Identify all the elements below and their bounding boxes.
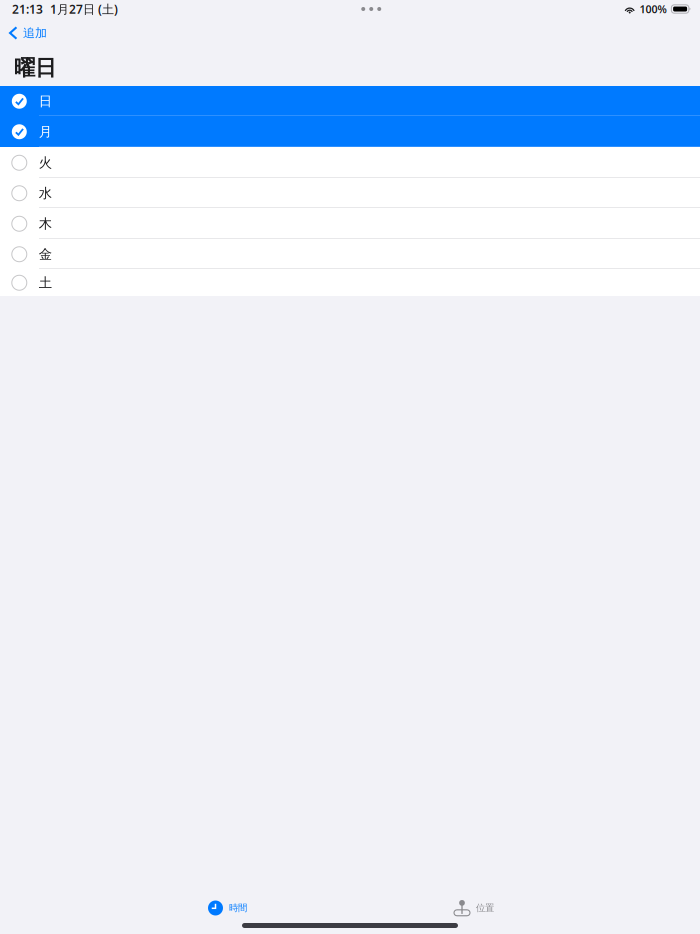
button[interactable]: 位置: [454, 896, 494, 920]
staticText: 追加: [23, 26, 47, 40]
staticText: 火: [39, 155, 52, 171]
staticText: 金: [39, 246, 52, 262]
staticText: 月: [39, 124, 52, 140]
button[interactable]: 月: [0, 116, 700, 147]
button[interactable]: 日: [0, 86, 700, 116]
staticText: 時間: [229, 902, 247, 914]
staticText: 21:13: [12, 1, 43, 17]
button[interactable]: 土: [0, 269, 700, 296]
button[interactable]: 水: [0, 178, 700, 208]
staticText: 100%: [639, 2, 666, 16]
button[interactable]: 時間: [208, 896, 247, 919]
button[interactable]: 金: [0, 239, 700, 269]
staticText: 日: [39, 93, 52, 109]
button[interactable]: 木: [0, 208, 700, 239]
button[interactable]: 火: [0, 147, 700, 178]
button[interactable]: 追加: [0, 18, 55, 48]
staticText: 土: [39, 275, 52, 291]
staticText: 木: [39, 216, 52, 232]
staticText: 位置: [476, 902, 494, 914]
staticText: 1月27日 (土): [50, 1, 118, 17]
staticText: 曜日: [14, 55, 56, 81]
staticText: 水: [39, 185, 52, 201]
